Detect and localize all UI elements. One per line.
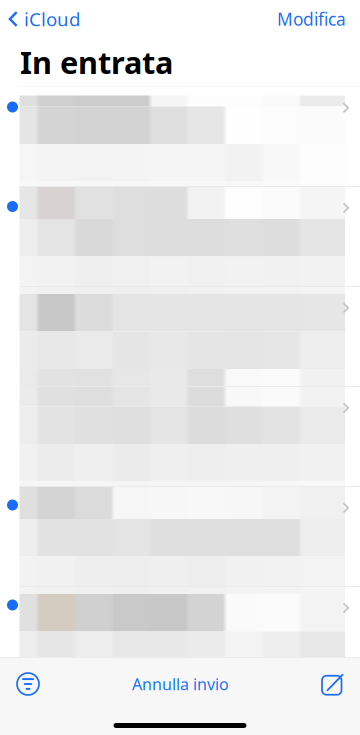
button[interactable]: Modifica — [263, 0, 360, 38]
button[interactable]: Apri messaggio — [331, 90, 360, 126]
button[interactable]: Apri messaggio — [331, 590, 360, 626]
button[interactable]: Apri messaggio — [331, 290, 360, 326]
button[interactable]: iCloud — [0, 0, 90, 38]
button[interactable]: Scrivi nuovo messaggio — [311, 664, 355, 704]
button[interactable]: Apri messaggio — [331, 390, 360, 426]
button[interactable]: Apri messaggio — [331, 490, 360, 526]
button[interactable]: Apri messaggio — [331, 190, 360, 226]
staticText: Modifica — [277, 7, 346, 30]
staticText: Annulla invio — [132, 673, 229, 695]
button[interactable]: Filtra — [6, 664, 50, 704]
staticText: iCloud — [24, 7, 80, 31]
button[interactable]: Annulla invio — [132, 664, 229, 704]
staticText: In entrata — [20, 42, 173, 82]
